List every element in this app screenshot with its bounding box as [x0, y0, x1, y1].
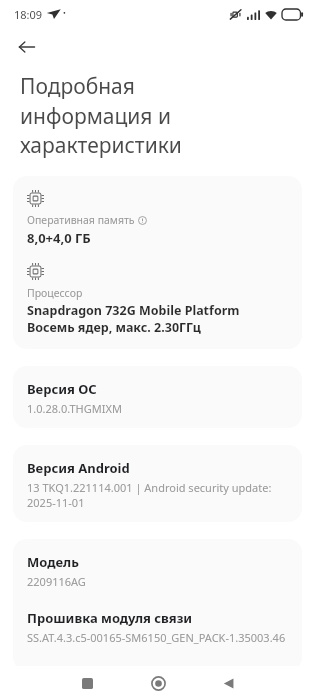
staticText: 13 TKQ1.221114.001 | Android security up…	[27, 480, 272, 510]
button[interactable]: Модель	[13, 539, 302, 671]
staticText: SS.AT.4.3.c5-00165-SM6150_GEN_PACK-1.350…	[27, 630, 286, 645]
staticText: 18:09	[14, 7, 43, 22]
button[interactable]: Версия Android	[13, 445, 302, 522]
staticText: Оперативная память	[27, 213, 135, 227]
staticText: 2209116AG	[27, 574, 86, 589]
staticText: Прошивка модуля связи	[27, 609, 193, 627]
staticText: Модель	[27, 553, 79, 571]
button[interactable]: Back	[10, 30, 44, 64]
staticText: Подробная информация и характеристики	[20, 72, 182, 159]
staticText: Версия Android	[27, 459, 130, 477]
staticText: 8,0+4,0 ГБ	[27, 229, 91, 247]
button[interactable]: Home	[141, 666, 175, 700]
staticText: Snapdragon 732G Mobile Platform Восемь я…	[27, 302, 240, 335]
staticText: Процессор	[27, 286, 83, 300]
staticText: Версия ОС	[27, 380, 97, 398]
button[interactable]: Оперативная память	[13, 176, 302, 349]
button[interactable]: Recent apps	[70, 666, 104, 700]
button[interactable]: Версия ОС	[13, 366, 302, 428]
button[interactable]: Back	[211, 666, 245, 700]
staticText: 1.0.28.0.THGMIXM	[27, 401, 122, 416]
